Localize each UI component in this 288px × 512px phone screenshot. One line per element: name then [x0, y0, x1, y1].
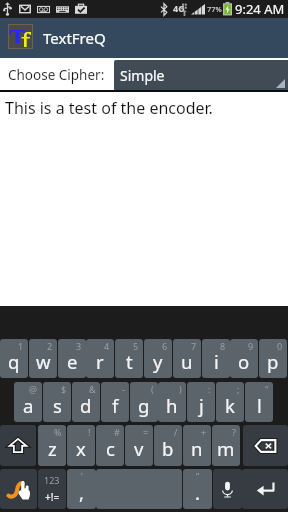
staticText: TextFreQ — [43, 28, 106, 48]
button[interactable]: y — [144, 339, 172, 378]
staticText: 6 — [162, 340, 168, 352]
staticText: ’ — [81, 470, 83, 482]
staticText: a — [23, 393, 34, 418]
staticText: b — [162, 436, 174, 461]
button[interactable]: p — [259, 339, 287, 378]
staticText: : — [208, 383, 211, 395]
button[interactable]: Simple — [114, 60, 288, 91]
button[interactable]: Shift — [0, 425, 36, 466]
staticText: w — [36, 349, 51, 374]
staticText: ? — [232, 426, 236, 438]
staticText: 7 — [191, 340, 197, 352]
button[interactable]: s — [43, 382, 71, 422]
button[interactable]: c — [96, 425, 124, 466]
staticText: d — [80, 393, 92, 418]
staticText: x — [76, 436, 86, 461]
staticText: Simple — [120, 66, 165, 85]
staticText: 5 — [133, 340, 139, 352]
staticText: z — [48, 436, 57, 461]
staticText: r — [96, 349, 104, 374]
staticText: 4 — [104, 340, 110, 352]
staticText: 9:24 AM — [235, 0, 285, 18]
staticText: % — [54, 426, 62, 438]
staticText: 77% — [207, 4, 222, 14]
staticText: g — [138, 393, 150, 418]
staticText: 3 — [76, 340, 82, 352]
button[interactable]: k — [216, 382, 244, 422]
staticText: & — [89, 383, 96, 395]
staticText: 9 — [248, 340, 254, 352]
staticText: 8 — [220, 340, 226, 352]
staticText: $ — [61, 383, 67, 395]
staticText: y — [153, 349, 163, 374]
staticText: h — [166, 393, 178, 418]
button[interactable]: Symbols — [38, 469, 66, 509]
button[interactable]: w — [29, 339, 57, 378]
staticText: @ — [29, 383, 38, 395]
staticText: i — [214, 349, 219, 374]
button[interactable]: e — [58, 339, 86, 378]
staticText: t — [126, 349, 133, 374]
staticText: 1 — [18, 340, 24, 352]
button[interactable]: a — [14, 382, 42, 422]
staticText: This is a test of the encoder. — [5, 97, 213, 119]
button[interactable]: Swype input — [0, 469, 37, 509]
staticText: u — [181, 349, 193, 374]
staticText: s — [53, 393, 62, 418]
button[interactable]: j — [187, 382, 215, 422]
staticText: j — [199, 393, 204, 418]
staticText: / — [174, 426, 178, 438]
staticText: e — [67, 349, 78, 374]
button[interactable]: l — [245, 382, 273, 422]
button[interactable]: v — [125, 425, 153, 466]
staticText: # — [114, 426, 120, 438]
staticText: ; — [237, 383, 240, 395]
staticText: l — [257, 393, 262, 418]
staticText: 123 — [44, 474, 60, 486]
button[interactable]: d — [72, 382, 100, 422]
button[interactable]: b — [154, 425, 182, 466]
staticText: , — [79, 480, 84, 505]
staticText: v — [134, 436, 144, 461]
button[interactable]: z — [38, 425, 66, 466]
button[interactable]: Backspace — [243, 425, 288, 466]
staticText: . — [195, 480, 200, 505]
staticText: o — [238, 349, 250, 374]
button[interactable]: m — [212, 425, 240, 466]
staticText: Choose Cipher: — [8, 66, 105, 84]
button[interactable]: t — [115, 339, 143, 378]
staticText: " — [265, 383, 269, 395]
button[interactable]: x — [67, 425, 95, 466]
staticText: +!= — [45, 490, 60, 504]
staticText: k — [225, 393, 235, 418]
button[interactable]: Enter — [242, 469, 288, 509]
button[interactable]: o — [230, 339, 258, 378]
button[interactable]: q — [0, 339, 28, 378]
button[interactable]: i — [202, 339, 230, 378]
staticText: 0 — [277, 340, 283, 352]
staticText: + — [201, 426, 207, 438]
button[interactable]: , — [67, 469, 96, 509]
staticText: 4G — [173, 2, 185, 14]
button[interactable]: h — [158, 382, 186, 422]
staticText: 2 — [47, 340, 53, 352]
staticText: = — [143, 426, 149, 438]
staticText: n — [191, 436, 203, 461]
staticText: m — [217, 436, 235, 461]
staticText: f — [112, 393, 119, 418]
staticText: ! — [88, 426, 91, 438]
button[interactable]: r — [86, 339, 114, 378]
button[interactable]: . — [183, 469, 212, 509]
button[interactable]: u — [173, 339, 201, 378]
staticText: T — [9, 20, 26, 43]
staticText: - — [122, 383, 125, 395]
staticText: q — [8, 349, 20, 374]
staticText: ) — [179, 383, 182, 395]
button[interactable]: g — [130, 382, 158, 422]
button[interactable]: f — [101, 382, 129, 422]
staticText: ” — [196, 470, 200, 482]
button[interactable]: n — [183, 425, 211, 466]
button[interactable]: Voice input — [213, 469, 242, 509]
staticText: ( — [151, 383, 154, 395]
